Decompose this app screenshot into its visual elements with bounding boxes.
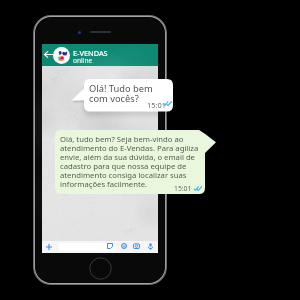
button[interactable] bbox=[58, 243, 116, 251]
button[interactable]: Emoji bbox=[121, 243, 127, 249]
button[interactable]: Profile photo bbox=[53, 47, 70, 64]
staticText: Olá! Tudo bem com vocês? bbox=[89, 82, 153, 105]
staticText: 15:01 bbox=[174, 184, 192, 193]
button[interactable]: Olá, tudo bem? Seja bem-vindo ao atendim… bbox=[55, 130, 205, 194]
button[interactable]: Stickers bbox=[107, 243, 113, 249]
staticText: 15:01 bbox=[147, 100, 166, 110]
staticText: Olá, tudo bem? Seja bem-vindo ao atendim… bbox=[60, 134, 199, 190]
staticText: E-VENDAS bbox=[73, 48, 108, 58]
button[interactable]: Attach bbox=[44, 242, 54, 252]
button[interactable]: Back bbox=[42, 44, 158, 66]
button[interactable]: Back bbox=[43, 48, 54, 61]
button[interactable]: Olá! Tudo bem com vocês? bbox=[84, 79, 173, 112]
button[interactable]: Camera bbox=[133, 243, 140, 249]
button[interactable]: Voice message bbox=[148, 243, 153, 250]
staticText: online bbox=[73, 56, 93, 65]
